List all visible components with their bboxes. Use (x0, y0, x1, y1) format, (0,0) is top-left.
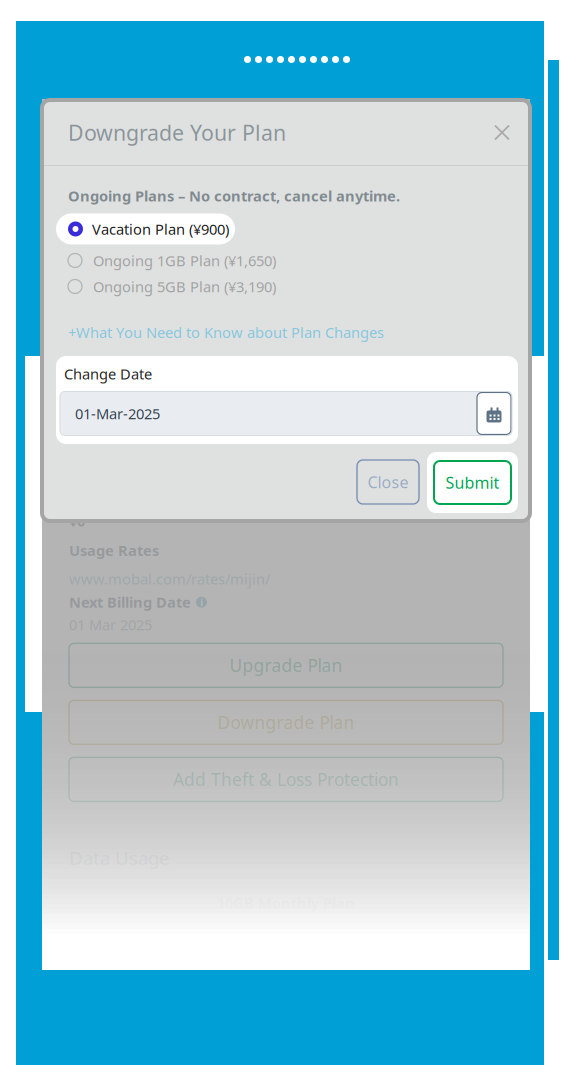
staticText: Vacation Plan (¥900) (92, 219, 229, 239)
staticText: Upgrade Plan (229, 654, 342, 677)
staticText: Ongoing Plans – No contract, cancel anyt… (68, 186, 400, 205)
staticText: 01 Mar 2025 (69, 615, 152, 634)
staticText: Close (367, 471, 408, 493)
staticText: Ongoing 1GB Plan (¥1,650) (93, 251, 276, 270)
staticText: Downgrade Your Plan (68, 118, 286, 147)
button[interactable]: Close (357, 460, 419, 504)
staticText: +What You Need to Know about Plan Change… (68, 322, 384, 342)
button[interactable]: Close (491, 121, 513, 143)
staticText: 10GB Monthly Plan (217, 893, 355, 913)
button[interactable]: Upgrade Plan (69, 643, 503, 687)
staticText: Usage Rates (69, 540, 159, 560)
staticText: www.mobal.com/rates/mijin/ (69, 569, 270, 588)
staticText: Submit (445, 472, 499, 493)
button[interactable]: 01-Mar-2025 (60, 391, 512, 435)
button[interactable]: Downgrade Plan (69, 700, 503, 744)
button[interactable]: Add Theft & Loss Protection (69, 757, 503, 801)
staticText: ¥0 (69, 511, 85, 530)
staticText: Change Date (64, 364, 152, 383)
staticText: 01-Mar-2025 (75, 404, 160, 423)
staticText: Next Billing Date (69, 592, 191, 612)
button[interactable]: Submit (434, 461, 511, 504)
staticText: Downgrade Plan (217, 711, 354, 734)
staticText: Add Theft & Loss Protection (173, 768, 399, 791)
staticText: i (200, 595, 203, 609)
staticText: Data Usage (69, 845, 170, 870)
staticText: Ongoing 5GB Plan (¥3,190) (93, 277, 276, 296)
